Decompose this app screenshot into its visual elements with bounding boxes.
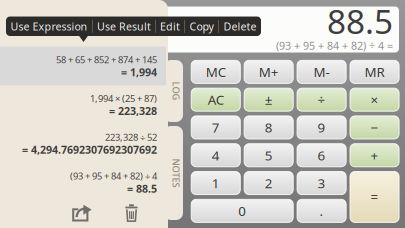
staticText: AC [208,91,224,108]
button[interactable]: Delete [219,16,261,36]
staticText: + [370,146,378,164]
staticText: LOG [166,85,185,97]
staticText: = 4,294.7692307692307692 [22,143,157,157]
staticText: M- [314,63,330,81]
staticText: Edit [160,19,180,33]
staticText: = 88.5 [127,181,157,196]
button[interactable]: Use Expression [6,16,92,36]
button[interactable]: Use Result [93,16,155,36]
staticText: (93 + 95 + 84 + 82) ÷ 4 = [276,38,393,53]
staticText: 223,328 ÷ 52 [105,131,157,143]
staticText: 1 [212,174,220,192]
staticText: 6 [318,146,326,164]
staticText: 5 [265,146,273,164]
button[interactable]: = [350,171,399,222]
button[interactable]: NOTES [164,126,183,220]
staticText: 9 [318,119,326,136]
staticText: 58 + 65 + 852 + 874 + 145 [56,53,157,66]
staticText: 1,994 × (25 + 87) [90,92,157,105]
staticText: 3 [318,174,326,192]
button[interactable]: Copy [185,16,218,36]
button[interactable]: 58 + 65 + 852 + 874 + 145 [0,47,166,85]
staticText: ÷ [318,91,326,108]
button[interactable]: ÷ [297,88,346,111]
staticText: Delete [223,19,256,33]
button[interactable]: + [350,144,399,167]
staticText: 88.5 [327,0,393,43]
button[interactable]: 8 [244,116,293,139]
staticText: NOTES [161,167,190,179]
button[interactable]: Edit [156,16,184,36]
staticText: . [320,202,324,220]
button[interactable]: 9 [297,116,346,139]
button[interactable]: 7 [191,116,240,139]
button[interactable]: 4 [191,144,240,167]
button[interactable]: − [350,116,399,139]
button[interactable]: 2 [244,171,293,195]
button[interactable]: M+ [244,60,293,83]
staticText: MC [206,63,226,81]
button[interactable]: 1 [191,171,240,195]
staticText: MR [364,63,384,81]
staticText: − [370,119,378,136]
button[interactable]: M- [297,60,346,83]
button[interactable]: (93 + 95 + 84 + 82) ÷ 4 [0,163,166,202]
staticText: (93 + 95 + 84 + 82) ÷ 4 [70,170,157,182]
button[interactable]: 0 [191,199,293,222]
button[interactable]: 5 [244,144,293,167]
button[interactable]: Delete [125,204,138,222]
staticText: = 1,994 [121,65,157,79]
staticText: = 223,328 [109,104,157,118]
button[interactable]: . [297,199,346,222]
staticText: 8 [265,119,273,136]
staticText: 7 [212,119,220,136]
staticText: = [370,188,378,206]
staticText: Use Result [97,19,151,33]
button[interactable]: 6 [297,144,346,167]
button[interactable]: 223,328 ÷ 52 [0,124,166,163]
button[interactable]: MR [350,60,399,83]
button[interactable]: MC [191,60,240,83]
button[interactable]: LOG [164,60,183,122]
staticText: 4 [212,146,220,164]
button[interactable]: × [350,88,399,111]
button[interactable]: Share [72,204,93,221]
staticText: Copy [189,19,213,33]
staticText: × [370,91,378,108]
button[interactable]: ± [244,88,293,111]
staticText: Use Expression [10,19,87,33]
staticText: 0 [238,202,246,220]
staticText: ± [265,91,273,108]
staticText: 2 [265,174,273,192]
button[interactable]: AC [191,88,240,111]
button[interactable]: 3 [297,171,346,195]
staticText: M+ [259,63,279,81]
button[interactable]: 1,994 × (25 + 87) [0,85,166,124]
